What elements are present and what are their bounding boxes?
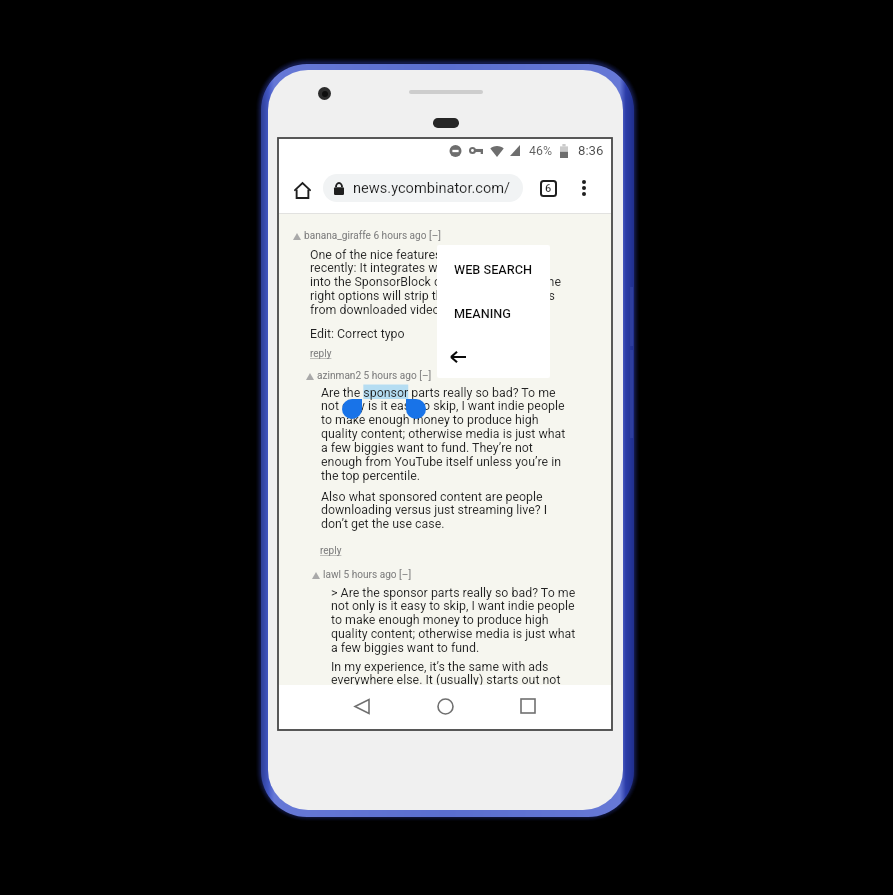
button[interactable]: Back xyxy=(437,338,550,376)
button[interactable]: reply xyxy=(320,545,342,557)
staticText: WEB SEARCH xyxy=(454,262,533,277)
staticText: lawl 5 hours ago [–] xyxy=(323,569,412,581)
staticText: news.ycombinator.com/ xyxy=(353,179,511,196)
button[interactable]: Home xyxy=(287,175,317,205)
button[interactable]: WEB SEARCH xyxy=(437,248,550,290)
button[interactable]: news.ycombinator.com/ xyxy=(323,174,523,202)
staticText: MEANING xyxy=(454,306,511,321)
staticText: One of the nice features of NewPipe I fo… xyxy=(310,247,572,317)
staticText: 46% xyxy=(529,143,553,158)
staticText: 8:36 xyxy=(578,143,604,158)
button[interactable]: Tabs, 6 open xyxy=(534,174,562,202)
staticText: Also what sponsored content are people d… xyxy=(321,489,568,531)
staticText: banana_giraffe 6 hours ago [–] xyxy=(304,230,442,242)
button[interactable]: Back xyxy=(345,689,379,723)
staticText: Edit: Correct typo xyxy=(310,326,557,341)
staticText: azinman2 5 hours ago [–] xyxy=(317,370,432,382)
staticText: In my experience, it’s the same with ads… xyxy=(331,659,578,687)
button[interactable]: More options xyxy=(570,174,598,202)
staticText: 6 xyxy=(545,182,552,195)
button[interactable]: Recent apps xyxy=(511,689,545,723)
staticText: > Are the sponsor parts really so bad? T… xyxy=(331,585,578,655)
button[interactable]: Home xyxy=(428,689,462,723)
button[interactable]: MEANING xyxy=(437,292,550,334)
staticText: Are the sponsor parts really so bad? To … xyxy=(321,385,568,483)
button[interactable]: reply xyxy=(310,348,332,360)
